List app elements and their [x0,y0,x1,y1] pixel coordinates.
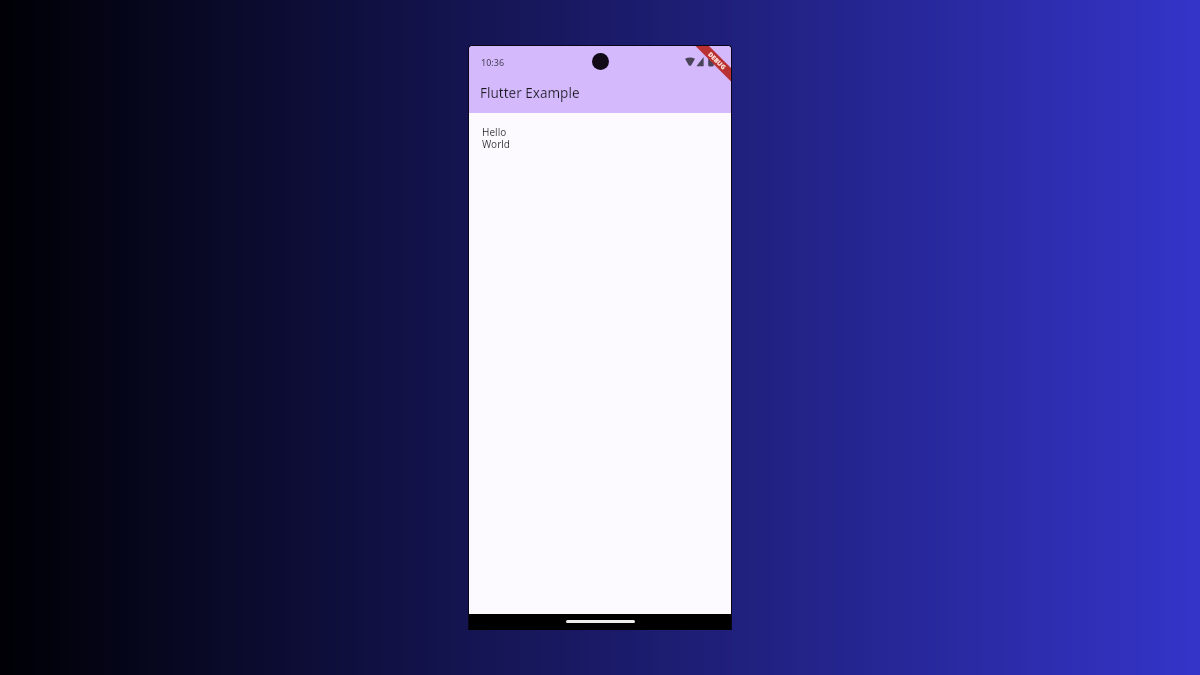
staticText: Hello World [482,125,511,151]
staticText: Flutter Example [480,84,580,102]
other: Wi-Fi, signal and battery status [685,56,715,67]
staticText: DEBUG [706,50,728,72]
button[interactable]: Home gesture bar [469,614,731,630]
button[interactable]: 10:36 [469,46,731,113]
staticText: 10:36 [481,56,505,68]
